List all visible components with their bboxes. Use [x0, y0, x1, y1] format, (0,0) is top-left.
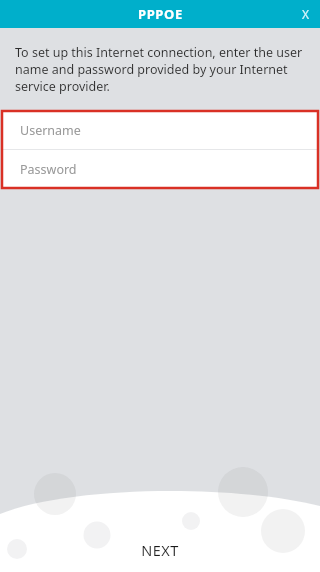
staticText: Username — [20, 122, 81, 139]
staticText: Password — [20, 161, 77, 178]
button[interactable]: Password — [3, 150, 317, 188]
staticText: PPPOE — [138, 5, 183, 23]
staticText: To set up this Internet connection, ente… — [15, 44, 304, 95]
staticText: NEXT — [141, 540, 179, 560]
button[interactable]: Username — [3, 111, 317, 149]
button[interactable]: Close — [292, 0, 320, 28]
button[interactable]: NEXT — [0, 528, 320, 572]
staticText: X — [302, 6, 310, 22]
